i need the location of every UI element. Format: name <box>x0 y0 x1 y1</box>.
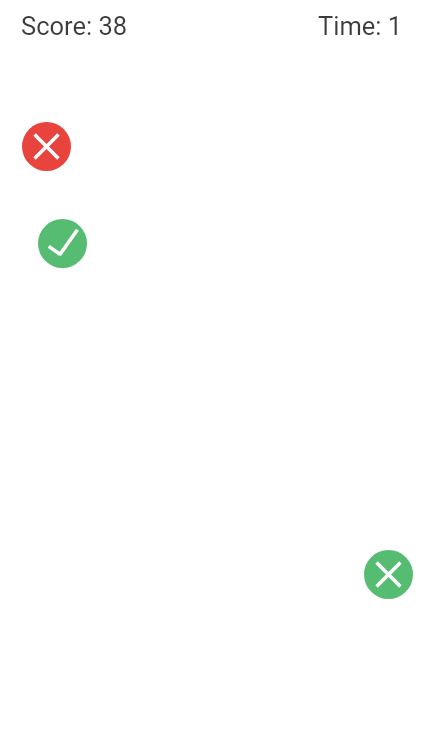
button[interactable]: Dismiss <box>364 550 413 599</box>
staticText: Score: 38 <box>21 11 128 41</box>
button[interactable]: Incorrect answer <box>22 122 71 171</box>
button[interactable]: Correct answer <box>38 219 87 268</box>
staticText: Time: 1 <box>318 11 403 41</box>
